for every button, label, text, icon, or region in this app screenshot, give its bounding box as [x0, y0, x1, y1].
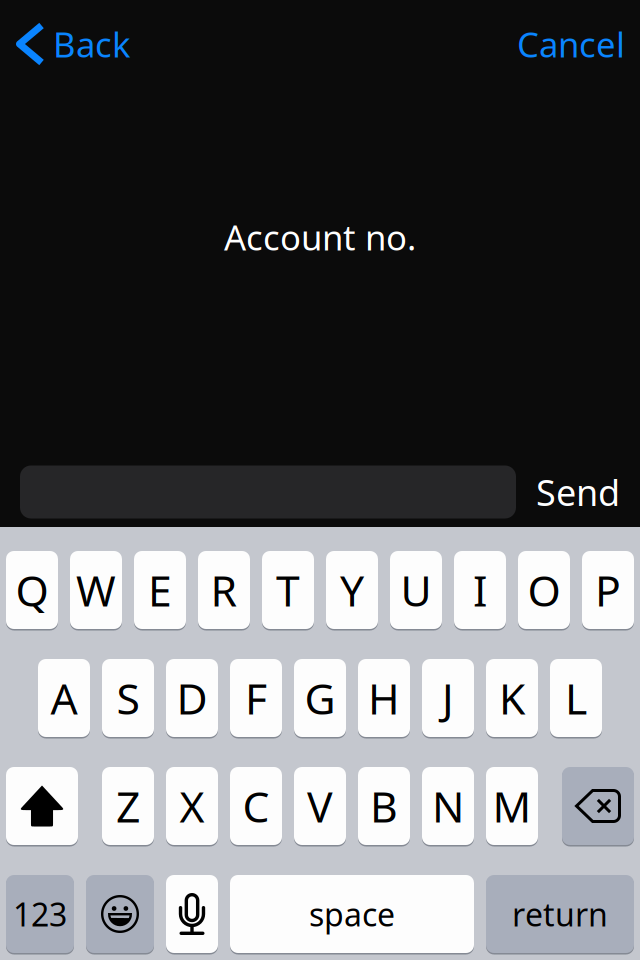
button[interactable]: G	[294, 659, 346, 737]
staticText: Account no.	[224, 214, 416, 260]
staticText: return	[512, 893, 608, 935]
button[interactable]: I	[454, 551, 506, 629]
button[interactable]: U	[390, 551, 442, 629]
button[interactable]: 123	[6, 875, 74, 953]
staticText: D	[176, 670, 207, 726]
staticText: I	[473, 562, 487, 618]
button[interactable]: M	[486, 767, 538, 845]
button[interactable]: Y	[326, 551, 378, 629]
button[interactable]: P	[582, 551, 634, 629]
staticText: 123	[13, 893, 67, 935]
staticText: S	[116, 670, 139, 726]
button[interactable]: S	[102, 659, 154, 737]
button[interactable]: X	[166, 767, 218, 845]
button[interactable]: Cancel	[517, 0, 640, 88]
button[interactable]: E	[134, 551, 186, 629]
staticText: M	[492, 778, 531, 834]
button[interactable]: O	[518, 551, 570, 629]
button[interactable]: A	[38, 659, 90, 737]
staticText: H	[368, 670, 400, 726]
staticText: W	[76, 562, 116, 618]
staticText: T	[276, 562, 300, 618]
staticText: Z	[116, 778, 140, 834]
staticText: K	[499, 670, 525, 726]
staticText: Send	[536, 468, 620, 516]
button[interactable]: T	[262, 551, 314, 629]
button[interactable]: Shift	[6, 767, 78, 845]
staticText: G	[304, 670, 335, 726]
button[interactable]: F	[230, 659, 282, 737]
button[interactable]: return	[486, 875, 634, 953]
staticText: R	[210, 562, 237, 618]
staticText: A	[50, 670, 77, 726]
staticText: Q	[15, 562, 48, 618]
staticText: V	[307, 778, 333, 834]
staticText: J	[442, 670, 454, 726]
button[interactable]: Delete	[562, 767, 634, 845]
button[interactable]: R	[198, 551, 250, 629]
button[interactable]: space	[230, 875, 474, 953]
button[interactable]: Q	[6, 551, 58, 629]
staticText: Cancel	[517, 21, 625, 67]
button[interactable]: K	[486, 659, 538, 737]
staticText: space	[309, 893, 395, 935]
button[interactable]: C	[230, 767, 282, 845]
staticText: O	[527, 562, 560, 618]
button[interactable]: W	[70, 551, 122, 629]
button[interactable]: B	[358, 767, 410, 845]
staticText: C	[242, 778, 269, 834]
button[interactable]: Z	[102, 767, 154, 845]
button[interactable]: Dictation	[166, 875, 218, 953]
staticText: E	[148, 562, 172, 618]
staticText: Y	[340, 562, 364, 618]
button[interactable]: D	[166, 659, 218, 737]
button[interactable]: L	[550, 659, 602, 737]
button[interactable]: V	[294, 767, 346, 845]
button[interactable]: Back	[0, 0, 131, 88]
staticText: L	[565, 670, 587, 726]
staticText: X	[179, 778, 204, 834]
button[interactable]: Emoji	[86, 875, 154, 953]
staticText: F	[245, 670, 267, 726]
staticText: N	[432, 778, 464, 834]
button[interactable]: J	[422, 659, 474, 737]
button[interactable]: N	[422, 767, 474, 845]
staticText: Back	[53, 21, 131, 67]
staticText: P	[595, 562, 621, 618]
button[interactable]: H	[358, 659, 410, 737]
staticText: U	[400, 562, 431, 618]
button[interactable]: Send	[536, 466, 620, 518]
staticText: B	[370, 778, 398, 834]
